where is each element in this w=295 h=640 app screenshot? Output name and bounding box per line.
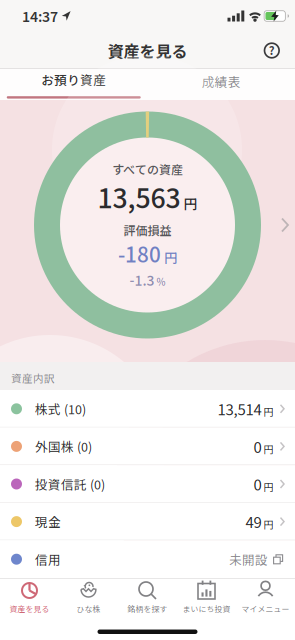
staticText: 信用 xyxy=(35,550,61,568)
staticText: 未開設 xyxy=(229,550,268,568)
staticText: 13,563 円 xyxy=(97,178,197,215)
staticText: ? xyxy=(269,42,275,58)
button[interactable]: マイメニュー xyxy=(236,580,295,614)
staticText: 外国株 (0) xyxy=(35,437,92,455)
button[interactable]: 資産を見る xyxy=(0,580,59,614)
button[interactable]: 株式 (10) xyxy=(0,390,295,428)
staticText: マイメニュー xyxy=(241,603,289,614)
staticText: お預り資産 xyxy=(41,70,106,88)
button[interactable]: ひな株 xyxy=(59,580,118,614)
button[interactable]: 現金 xyxy=(0,503,295,540)
staticText: すべての資産 xyxy=(112,160,183,178)
button[interactable]: お預り資産 xyxy=(0,69,147,100)
staticText: 14:37 xyxy=(22,6,58,26)
staticText: 13,514 円 xyxy=(217,398,273,419)
staticText: 投資信託 (0) xyxy=(35,475,105,493)
staticText: ひな株 xyxy=(76,603,100,614)
button[interactable]: 信用 xyxy=(0,540,295,578)
button[interactable]: 詳細 xyxy=(281,217,295,244)
staticText: 株式 (10) xyxy=(35,400,86,418)
button[interactable]: 投資信託 (0) xyxy=(0,465,295,503)
staticText: 資産を見る xyxy=(9,603,49,614)
button[interactable]: まいにち投資 xyxy=(177,580,236,614)
staticText: 評価損益 xyxy=(123,221,171,239)
staticText: 0 円 xyxy=(253,473,273,495)
staticText: 銘柄を探す xyxy=(127,603,167,614)
staticText: まいにち投資 xyxy=(182,603,230,614)
staticText: 成績表 xyxy=(202,72,241,90)
staticText: -1.3 % xyxy=(129,270,165,290)
staticText: -180 円 xyxy=(118,239,177,268)
button[interactable]: 銘柄を探す xyxy=(118,580,177,614)
staticText: 現金 xyxy=(35,512,61,531)
button[interactable]: 外国株 (0) xyxy=(0,428,295,465)
staticText: 資産を見る xyxy=(107,39,187,62)
button[interactable]: 成績表 xyxy=(147,69,295,100)
staticText: 49 円 xyxy=(245,511,273,532)
button[interactable]: ヘルプ xyxy=(264,42,280,59)
staticText: 0 円 xyxy=(253,436,273,457)
staticText: 資産内訳 xyxy=(11,370,55,386)
